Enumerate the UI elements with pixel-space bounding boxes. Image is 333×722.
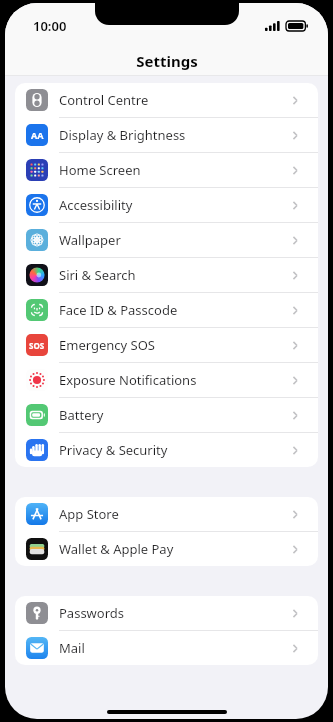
button[interactable]: Passwords bbox=[15, 596, 318, 630]
staticText: Privacy & Security bbox=[59, 441, 290, 459]
button[interactable]: Exposure Notifications bbox=[15, 363, 318, 397]
staticText: AA bbox=[31, 129, 44, 141]
button[interactable]: Battery bbox=[15, 398, 318, 432]
button[interactable]: SOS bbox=[15, 328, 318, 362]
staticText: Siri & Search bbox=[59, 266, 290, 284]
staticText: App Store bbox=[59, 505, 290, 523]
staticText: Face ID & Passcode bbox=[59, 301, 290, 319]
button[interactable]: Accessibility bbox=[15, 188, 318, 222]
staticText: Display & Brightness bbox=[59, 126, 290, 144]
button[interactable]: Control Centre bbox=[15, 83, 318, 117]
staticText: Control Centre bbox=[59, 91, 290, 109]
staticText: Emergency SOS bbox=[59, 336, 290, 354]
button[interactable]: App Store bbox=[15, 497, 318, 531]
button[interactable]: AA bbox=[15, 118, 318, 152]
staticText: Mail bbox=[59, 639, 290, 657]
staticText: SOS bbox=[29, 340, 45, 351]
staticText: Accessibility bbox=[59, 196, 290, 214]
staticText: Wallet & Apple Pay bbox=[59, 540, 290, 558]
button[interactable]: Privacy & Security bbox=[15, 433, 318, 467]
staticText: 10:00 bbox=[33, 17, 67, 35]
staticText: Exposure Notifications bbox=[59, 371, 290, 389]
staticText: Passwords bbox=[59, 604, 290, 622]
staticText: Wallpaper bbox=[59, 231, 290, 249]
button[interactable]: Home Screen bbox=[15, 153, 318, 187]
button[interactable]: Wallpaper bbox=[15, 223, 318, 257]
button[interactable]: Wallet & Apple Pay bbox=[15, 532, 318, 566]
button[interactable]: Face ID & Passcode bbox=[15, 293, 318, 327]
button[interactable]: Siri & Search bbox=[15, 258, 318, 292]
button[interactable]: Mail bbox=[15, 631, 318, 665]
staticText: Settings bbox=[136, 51, 198, 71]
staticText: Home Screen bbox=[59, 161, 290, 179]
staticText: Battery bbox=[59, 406, 290, 424]
